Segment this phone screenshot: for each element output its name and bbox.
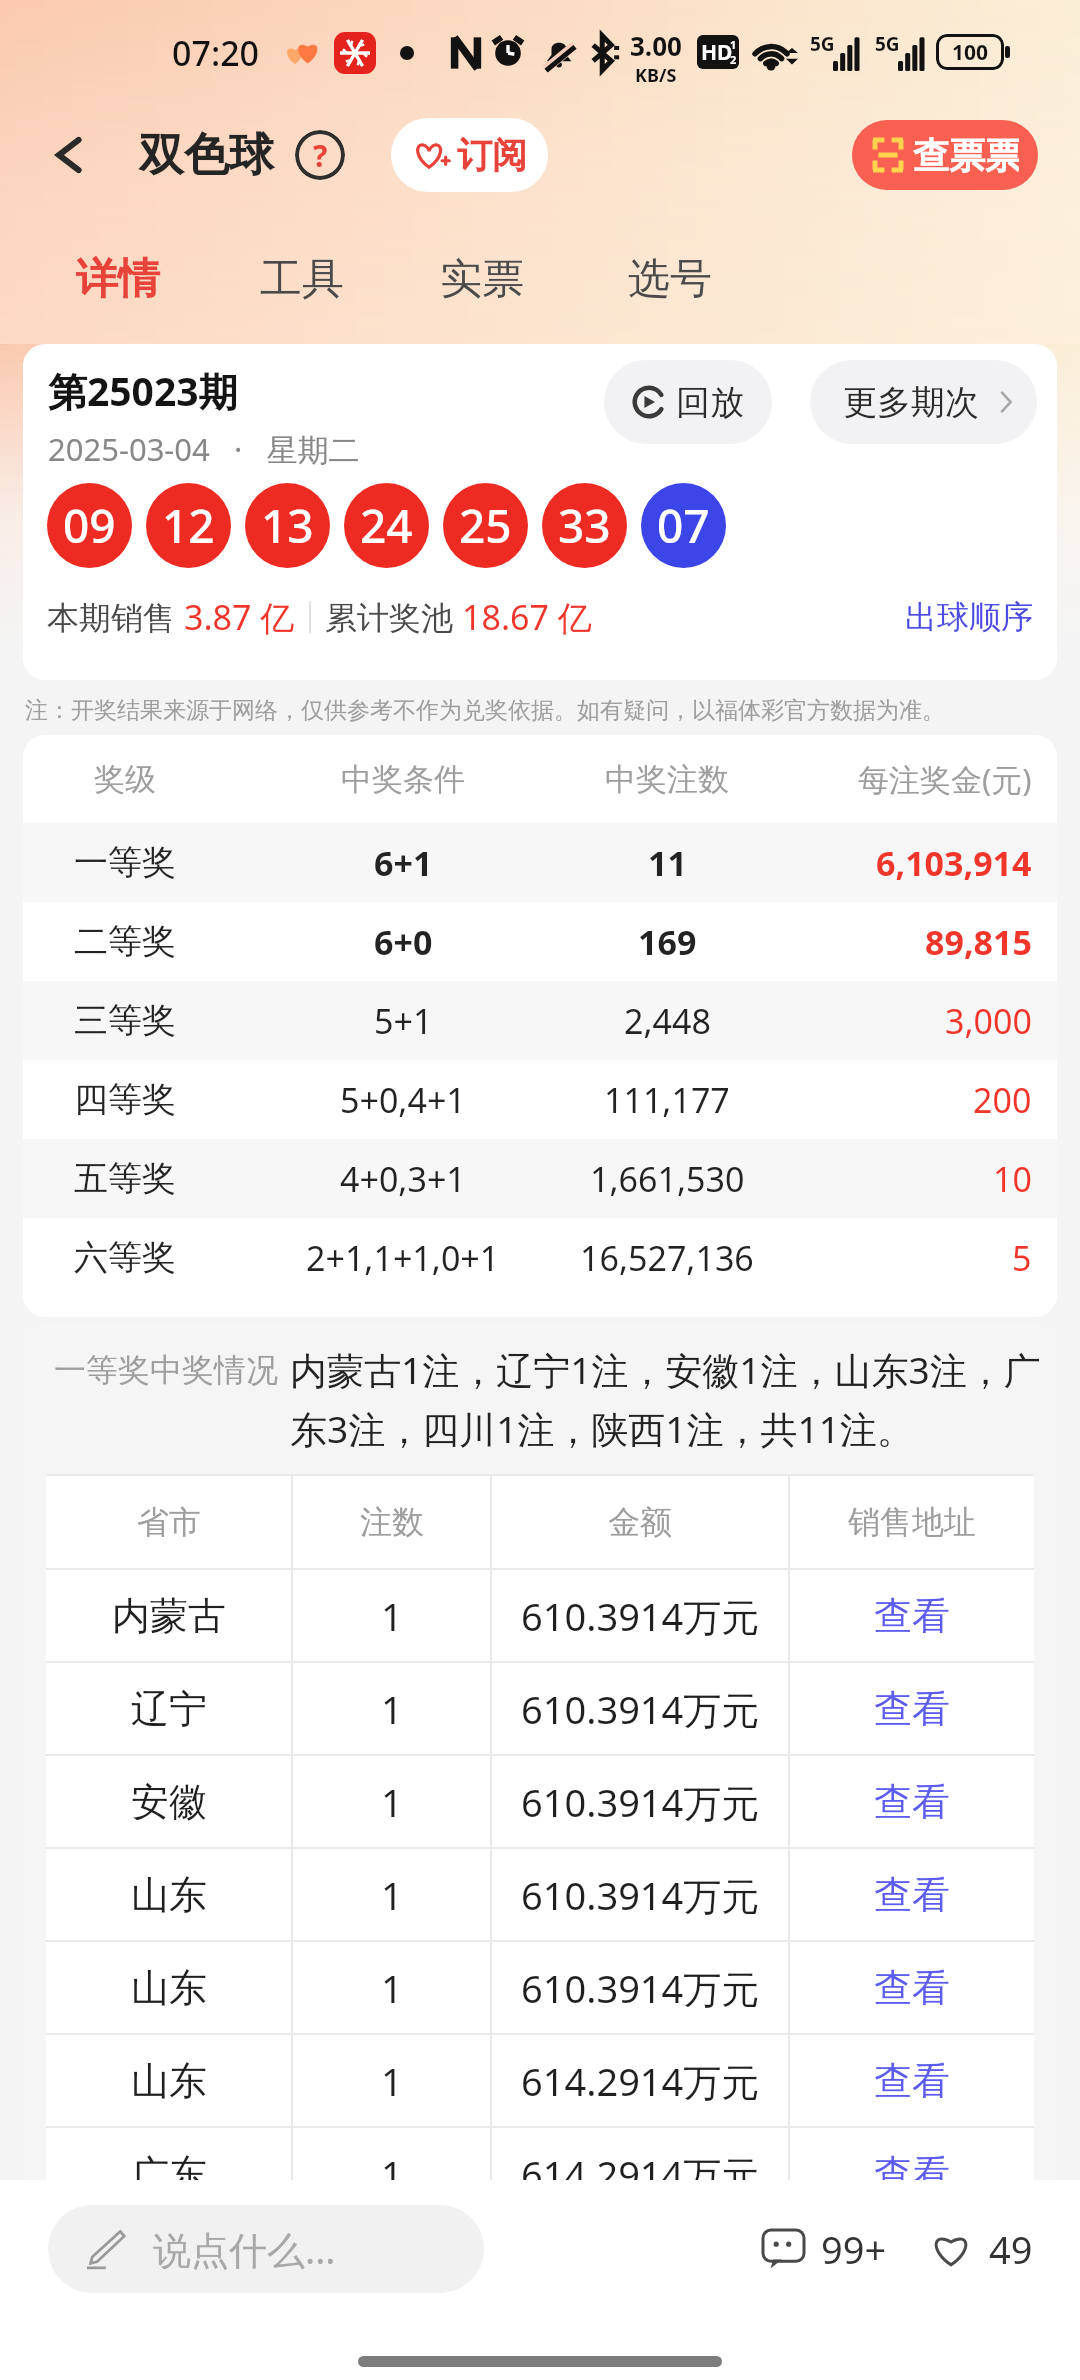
staticText: 内蒙古1注，辽宁1注，安徽1注，山东3注，广东3注，四川1注，陕西1注，共11注…	[290, 1344, 1055, 1454]
staticText: KB/S	[635, 63, 677, 88]
button[interactable]: Help	[293, 128, 347, 182]
staticText: 奖级	[94, 760, 156, 799]
staticText: 累计奖池	[325, 595, 462, 639]
staticText: 金额	[608, 1502, 672, 1542]
staticText: 查看	[874, 2057, 950, 2105]
staticText: 工具	[260, 253, 344, 306]
button[interactable]: Comments	[756, 2217, 893, 2281]
staticText: 查看	[874, 1778, 950, 1826]
button[interactable]: 说点什么...	[48, 2205, 484, 2293]
button[interactable]: 查票票	[852, 120, 1038, 190]
staticText: 查看	[874, 1871, 950, 1919]
button[interactable]: 详情	[68, 214, 168, 344]
button[interactable]: 实票	[432, 214, 532, 344]
staticText: 1	[730, 37, 737, 52]
staticText: 安徽	[131, 1778, 207, 1826]
button[interactable]: 查看	[868, 1958, 956, 2018]
button[interactable]: 查看	[868, 1772, 956, 1832]
staticText: 中奖注数	[605, 760, 729, 799]
button[interactable]: 订阅	[391, 118, 548, 192]
staticText: 6,103,914	[876, 840, 1032, 886]
staticText: 610.3914万元	[521, 1590, 760, 1642]
staticText: 610.3914万元	[521, 1776, 760, 1828]
button[interactable]: 查看	[868, 1679, 956, 1739]
staticText: 注：开奖结果来源于网络，仅供参考不作为兑奖依据。如有疑问，以福体彩官方数据为准。	[25, 696, 945, 725]
staticText: 山东	[131, 1964, 207, 2012]
staticText: 3,000	[945, 998, 1032, 1044]
staticText: 查看	[874, 1592, 950, 1640]
staticText: 五等奖	[74, 1157, 176, 1200]
staticText: 销售地址	[848, 1502, 976, 1542]
staticText: 18.67 亿	[462, 594, 592, 640]
button[interactable]: 查看	[868, 2051, 956, 2111]
staticText: 89,815	[925, 919, 1032, 965]
staticText: 614.2914万元	[521, 2148, 760, 2200]
staticText: 3.87 亿	[184, 594, 295, 640]
staticText: ?	[313, 135, 328, 176]
button[interactable]: 出球顺序	[905, 591, 1033, 643]
staticText: 1	[381, 1869, 403, 1921]
button[interactable]: 回放	[604, 360, 772, 444]
staticText: 111,177	[604, 1077, 730, 1123]
staticText: 每注奖金(元)	[858, 758, 1032, 800]
staticText: 出球顺序	[905, 597, 1033, 637]
staticText: 说点什么...	[153, 2223, 336, 2275]
staticText: 一等奖中奖情况	[54, 1350, 278, 1390]
staticText: 610.3914万元	[521, 1962, 760, 2014]
staticText: 99+	[821, 2223, 887, 2275]
staticText: 24	[360, 494, 413, 557]
staticText: 注数	[360, 1502, 424, 1542]
staticText: 第25023期	[48, 364, 238, 417]
staticText: 二等奖	[74, 920, 176, 963]
button[interactable]: Like	[923, 2217, 1039, 2281]
staticText: 详情	[76, 253, 160, 306]
staticText: 3.00	[630, 28, 682, 63]
staticText: 610.3914万元	[521, 1869, 760, 1921]
staticText: 广东	[131, 2150, 207, 2198]
staticText: 4+0,3+1	[340, 1156, 466, 1202]
staticText: 回放	[676, 381, 744, 424]
staticText: 六等奖	[74, 1236, 176, 1279]
button[interactable]: 查看	[868, 2144, 956, 2204]
staticText: 山东	[131, 1871, 207, 1919]
staticText: 四等奖	[74, 1078, 176, 1121]
staticText: 实票	[440, 253, 524, 306]
staticText: 09	[63, 494, 116, 557]
staticText: 1	[381, 1683, 403, 1735]
staticText: 07:20	[172, 30, 260, 76]
staticText: 13	[261, 494, 314, 557]
staticText: 1,661,530	[590, 1156, 745, 1202]
button[interactable]: Back	[31, 118, 105, 192]
staticText: 1	[381, 1590, 403, 1642]
staticText: 1	[381, 2148, 403, 2200]
button[interactable]: 更多期次	[810, 360, 1037, 444]
staticText: 16,527,136	[580, 1235, 754, 1281]
staticText: 查看	[874, 1964, 950, 2012]
staticText: 2025-03-04 · 星期二	[48, 428, 360, 470]
staticText: 5+0,4+1	[340, 1077, 466, 1123]
staticText: 查看	[874, 1685, 950, 1733]
staticText: 内蒙古	[112, 1592, 226, 1640]
staticText: 查票票	[913, 133, 1019, 178]
staticText: 1	[381, 2055, 403, 2107]
staticText: 07	[657, 494, 710, 557]
staticText: 三等奖	[74, 999, 176, 1042]
staticText: 610.3914万元	[521, 1683, 760, 1735]
staticText: 一等奖	[74, 841, 176, 884]
button[interactable]: 选号	[620, 214, 720, 344]
staticText: 33	[558, 494, 611, 557]
button[interactable]: 查看	[868, 1865, 956, 1925]
staticText: 双色球	[139, 127, 274, 184]
staticText: 5+1	[374, 998, 433, 1044]
button[interactable]: 查看	[868, 1586, 956, 1646]
staticText: 省市	[137, 1502, 201, 1542]
staticText: 1	[381, 1776, 403, 1828]
staticText: 5	[1012, 1235, 1032, 1281]
staticText: 1	[381, 1962, 403, 2014]
staticText: 本期销售	[47, 595, 184, 639]
staticText: 5G	[875, 31, 900, 57]
button[interactable]: 工具	[252, 214, 352, 344]
staticText: 查看	[874, 2150, 950, 2198]
staticText: 200	[973, 1077, 1032, 1123]
staticText: 12	[162, 494, 215, 557]
